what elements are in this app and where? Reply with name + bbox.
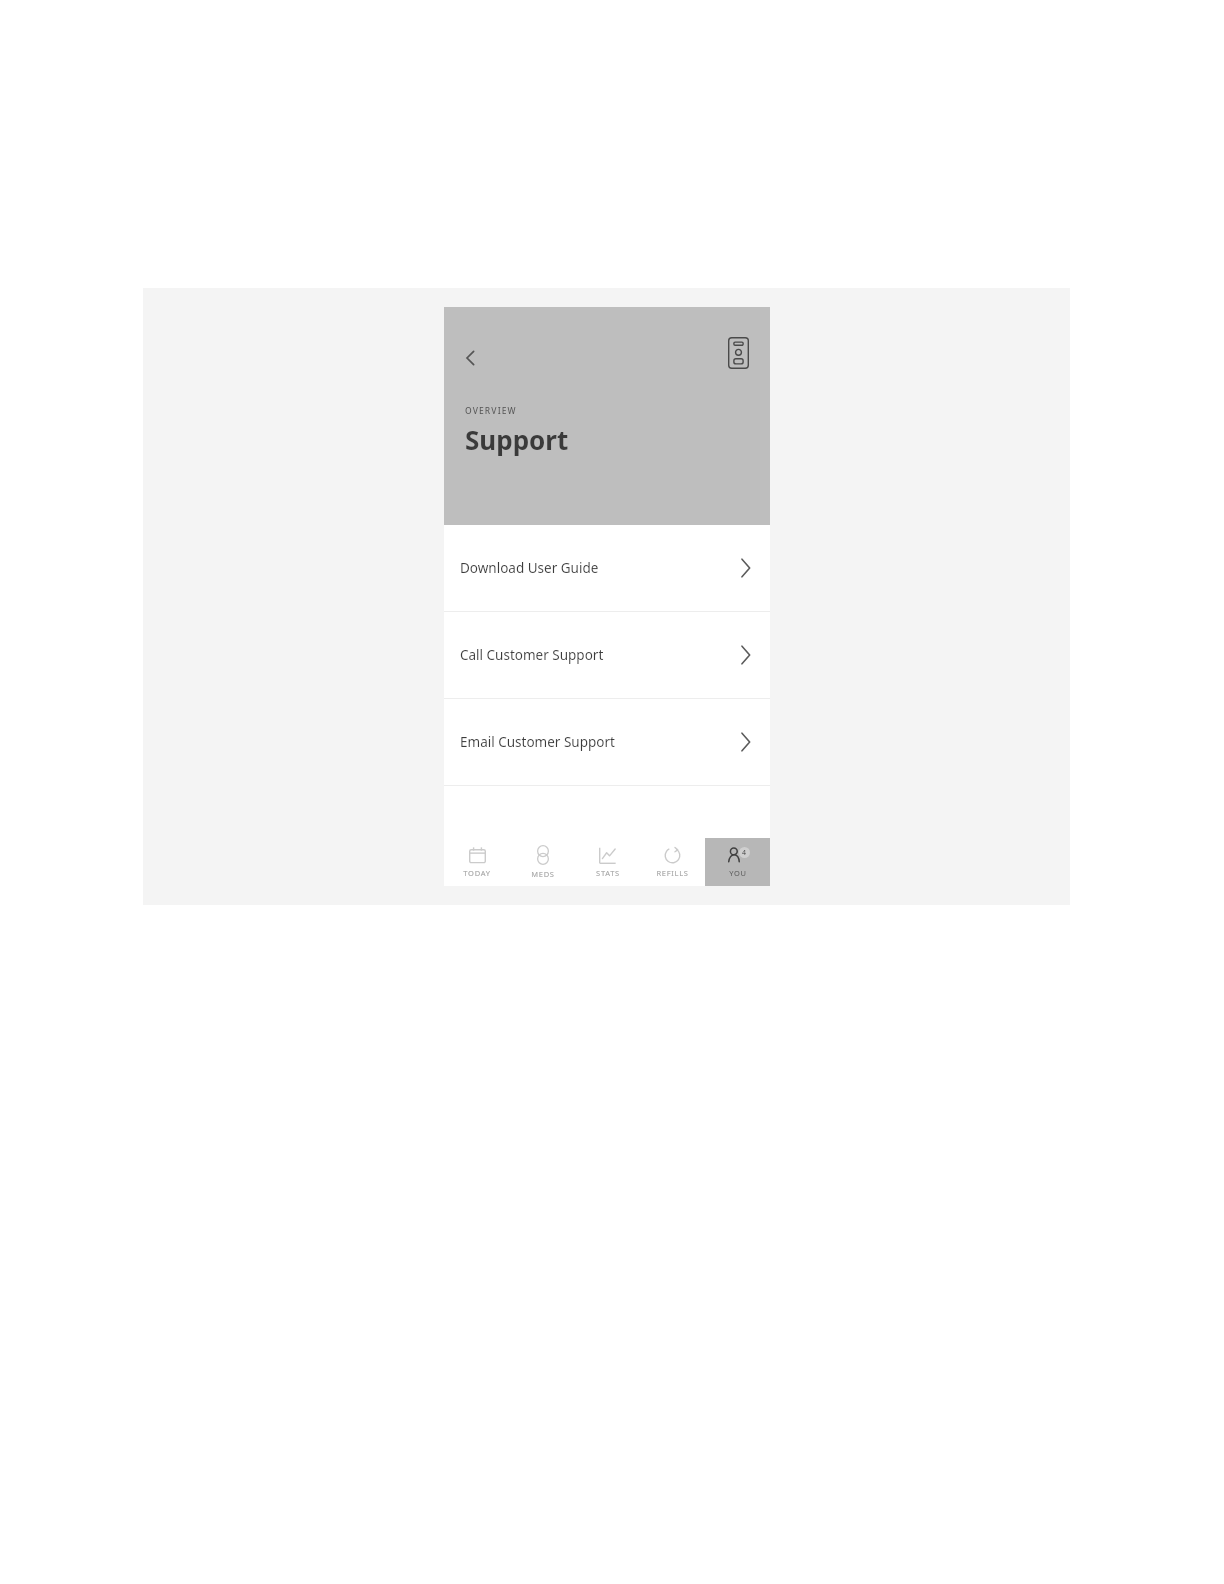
button[interactable]: Device info	[718, 333, 758, 373]
button[interactable]: Back	[448, 335, 494, 381]
button[interactable]: Email Customer Support	[444, 699, 770, 785]
staticText: Download User Guide	[460, 559, 740, 577]
staticText: 4	[742, 848, 747, 858]
button[interactable]: STATS	[575, 838, 640, 886]
staticText: STATS	[596, 868, 620, 878]
button[interactable]: Call Customer Support	[444, 612, 770, 698]
button[interactable]: TODAY	[444, 838, 510, 886]
staticText: Call Customer Support	[460, 646, 740, 664]
staticText: Email Customer Support	[460, 733, 740, 751]
staticText: REFILLS	[656, 868, 689, 878]
button[interactable]: REFILLS	[640, 838, 705, 886]
staticText: Support	[465, 422, 569, 457]
button[interactable]: Download User Guide	[444, 525, 770, 611]
staticText: MEDS	[531, 869, 555, 879]
staticText: YOU	[729, 868, 747, 878]
button[interactable]: MEDS	[510, 838, 575, 886]
staticText: OVERVIEW	[465, 405, 517, 417]
button[interactable]: 4	[705, 838, 770, 886]
staticText: TODAY	[463, 868, 491, 878]
